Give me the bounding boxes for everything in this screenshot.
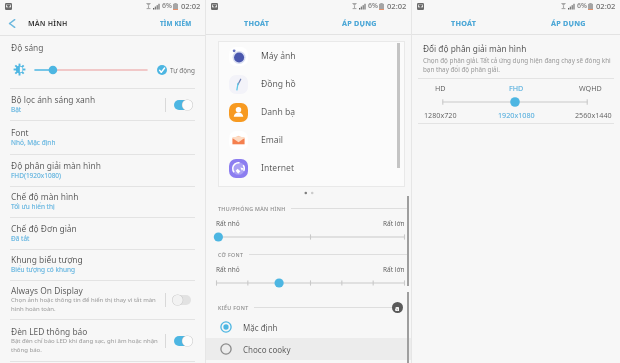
staticText: ÁP DỤNG <box>342 18 377 28</box>
button[interactable]: Máy ảnh <box>218 42 405 70</box>
staticText: Rất lớn <box>383 265 405 274</box>
button[interactable]: Always On Display <box>174 293 194 307</box>
staticText: THOÁT <box>244 18 270 28</box>
staticText: 02:02 <box>596 1 616 11</box>
button[interactable]: ÁP DỤNG <box>308 12 411 34</box>
staticText: Tối ưu hiển thị <box>11 202 195 211</box>
staticText: 6% <box>162 1 172 11</box>
staticText: Bộ lọc ánh sáng xanh <box>11 94 96 105</box>
staticText: Biểu tượng có khung <box>11 265 195 274</box>
staticText: 02:02 <box>387 1 407 11</box>
staticText: a <box>395 303 400 313</box>
staticText: Nhỏ, Mặc định <box>11 138 195 147</box>
button[interactable]: Đồng hồ <box>218 70 405 98</box>
staticText: FHD <box>509 83 524 93</box>
staticText: Rất nhỏ <box>216 219 240 228</box>
staticText: Chọn độ phân giải. Tất cả ứng dụng hiện … <box>423 56 611 74</box>
staticText: Độ phân giải màn hình <box>11 160 101 171</box>
button[interactable]: Đèn LED thông báo <box>0 320 205 361</box>
button[interactable]: THOÁT <box>206 12 308 34</box>
button[interactable]: Chế độ màn hình <box>0 187 205 217</box>
button[interactable]: ÁP DỤNG <box>516 12 620 34</box>
staticText: Đèn LED thông báo <box>11 326 88 337</box>
button[interactable]: Đèn LED thông báo <box>174 334 194 348</box>
button[interactable]: Font preview <box>392 302 403 313</box>
staticText: Always On Display <box>11 285 83 296</box>
staticText: Đã tắt <box>11 234 195 243</box>
button[interactable]: TÌM KIẾM <box>154 15 198 32</box>
staticText: Bật <box>11 105 163 114</box>
staticText: Chế độ màn hình <box>11 191 79 202</box>
staticText: Bật đèn chỉ báo LED khi đang sạc, ghi âm… <box>11 337 163 354</box>
staticText: Choco cooky <box>243 344 291 355</box>
staticText: 02:02 <box>181 1 201 11</box>
staticText: HD <box>435 83 446 93</box>
staticText: WQHD <box>579 83 602 93</box>
staticText: TÌM KIẾM <box>160 19 192 28</box>
staticText: Rất lớn <box>383 219 405 228</box>
staticText: Danh bạ <box>261 106 296 118</box>
staticText: Mặc định <box>243 322 278 333</box>
staticText: Khung biểu tượng <box>11 254 83 265</box>
staticText: Máy ảnh <box>261 50 296 62</box>
staticText: Chế độ Đơn giản <box>11 223 77 234</box>
button[interactable]: Email <box>218 126 405 154</box>
staticText: 2560x1440 <box>575 110 612 120</box>
button[interactable]: Choco cooky <box>206 338 411 360</box>
staticText: THU/PHÓNG MÀN HÌNH <box>218 205 286 212</box>
staticText: 6% <box>368 1 378 11</box>
staticText: Tự động <box>170 66 195 75</box>
button[interactable]: Bộ lọc ánh sáng xanh <box>174 98 194 112</box>
button[interactable]: Danh bạ <box>218 98 405 126</box>
button[interactable]: Chế độ Đơn giản <box>0 218 205 249</box>
staticText: Đổi độ phân giải màn hình <box>423 43 527 54</box>
button[interactable]: Khung biểu tượng <box>0 250 205 280</box>
button[interactable]: Font <box>0 121 205 154</box>
button[interactable]: Độ sáng <box>0 36 205 88</box>
staticText: Internet <box>261 162 294 174</box>
staticText: KIỂU FONT <box>218 304 249 311</box>
button[interactable]: Always On Display <box>0 281 205 319</box>
button[interactable]: Độ phân giải màn hình <box>0 155 205 186</box>
button[interactable]: Internet <box>218 154 405 182</box>
button[interactable]: Tự động <box>157 65 195 75</box>
staticText: 1280x720 <box>424 110 457 120</box>
button[interactable]: Back <box>0 12 24 35</box>
staticText: Rất nhỏ <box>216 265 240 274</box>
staticText: 6% <box>577 1 587 11</box>
button[interactable]: Bộ lọc ánh sáng xanh <box>0 89 205 120</box>
staticText: THOÁT <box>451 18 477 28</box>
button[interactable]: Mặc định <box>206 316 411 338</box>
staticText: FHD(1920x1080) <box>11 171 195 180</box>
staticText: Độ sáng <box>11 42 44 53</box>
staticText: Font <box>11 127 29 138</box>
staticText: MÀN HÌNH <box>28 19 68 29</box>
staticText: Đồng hồ <box>261 78 296 90</box>
button[interactable]: THOÁT <box>412 12 516 34</box>
staticText: CỠ FONT <box>218 251 244 258</box>
staticText: Chọn ảnh hoặc thông tin để hiển thị thay… <box>11 296 163 313</box>
staticText: ÁP DỤNG <box>551 18 586 28</box>
staticText: 1920x1080 <box>498 110 535 120</box>
staticText: Email <box>261 134 284 146</box>
